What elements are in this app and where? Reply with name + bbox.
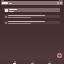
button[interactable]: Stats [30,60,35,64]
button[interactable]: Home [12,60,17,64]
button[interactable]: Profile [47,60,52,64]
button[interactable]: Add entry [57,53,62,58]
button[interactable] [4,21,60,24]
button[interactable] [4,8,60,12]
button[interactable] [4,15,60,18]
button[interactable]: Search [1,1,63,5]
